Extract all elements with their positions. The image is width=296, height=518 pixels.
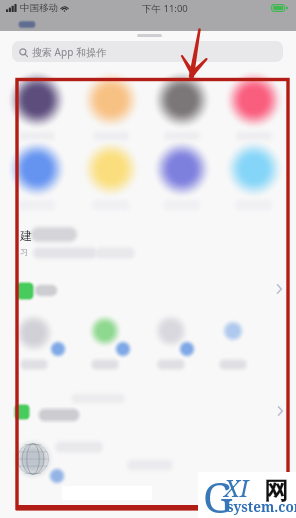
staticText: system.com [227, 498, 296, 516]
staticText: 下午 11:00 [142, 2, 188, 15]
staticText: 搜索 App 和操作 [32, 45, 106, 59]
staticText: 习 [20, 247, 28, 257]
staticText: 网 [264, 476, 288, 506]
staticText: XI [224, 471, 249, 504]
staticText: 中国移动 [20, 2, 58, 14]
staticText: G [203, 468, 233, 514]
staticText: 建 [20, 228, 32, 243]
button[interactable]: 搜索 App 和操作 [12, 41, 283, 62]
